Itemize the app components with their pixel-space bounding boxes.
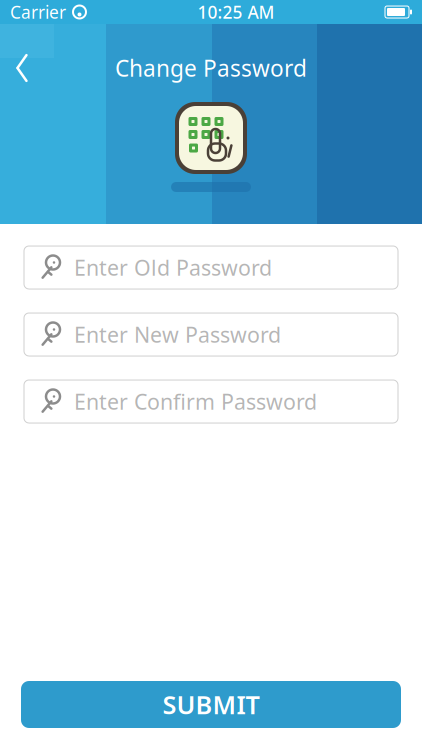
staticText: Carrier — [10, 0, 66, 23]
staticText: SUBMIT — [162, 688, 259, 721]
staticText: Enter Old Password — [74, 253, 272, 282]
staticText: Enter New Password — [74, 320, 281, 349]
button[interactable]: Back — [0, 46, 44, 90]
staticText: Enter Confirm Password — [74, 387, 317, 416]
staticText: 10:25 AM — [197, 0, 274, 23]
button[interactable]: Enter Old Password — [24, 246, 398, 289]
staticText: Change Password — [115, 53, 307, 83]
button[interactable]: SUBMIT — [21, 681, 401, 728]
button[interactable]: Enter New Password — [24, 313, 398, 356]
button[interactable]: Enter Confirm Password — [24, 380, 398, 423]
